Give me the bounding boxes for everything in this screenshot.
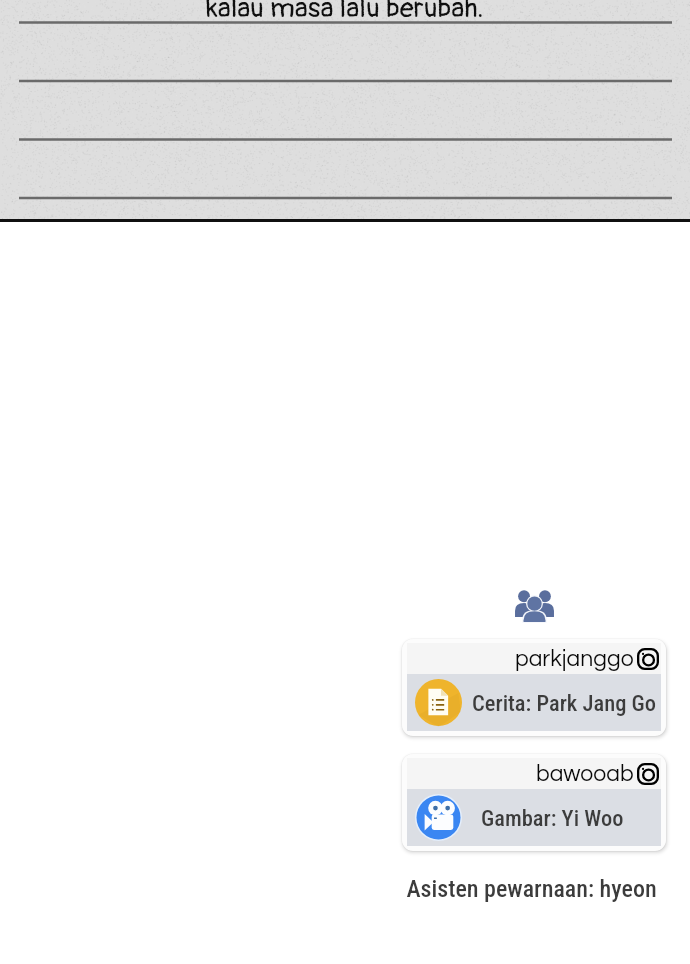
staticText: Asisten pewarnaan: hyeon <box>406 875 657 903</box>
staticText: Cerita: Park Jang Go <box>472 690 657 716</box>
other: Instagram <box>637 763 659 785</box>
staticText: parkjanggo <box>515 647 634 671</box>
other: Instagram <box>637 648 659 670</box>
button[interactable]: bawooab <box>402 754 666 851</box>
staticText: kalau masa lalu berubah. <box>206 0 484 26</box>
button[interactable]: parkjanggo <box>402 639 666 736</box>
staticText: Gambar: Yi Woo <box>481 805 624 831</box>
other: Creators <box>514 587 555 622</box>
staticText: bawooab <box>536 762 634 786</box>
